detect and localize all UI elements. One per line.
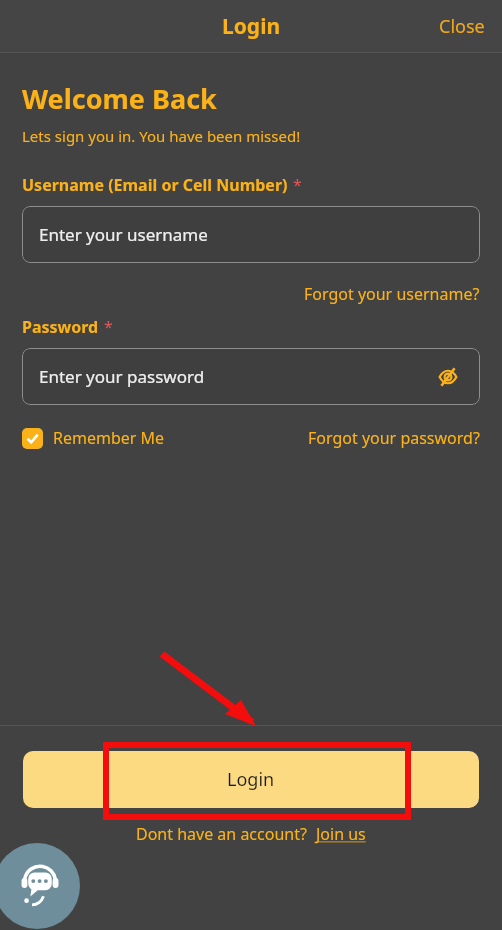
staticText: *: [293, 174, 302, 196]
staticText: Password: [22, 316, 99, 338]
staticText: Dont have an account?: [136, 823, 307, 845]
staticText: Join us: [316, 823, 366, 845]
button[interactable]: Close: [422, 4, 502, 49]
button[interactable]: Join us: [316, 823, 366, 845]
button[interactable]: Enter your password: [22, 348, 480, 405]
button[interactable]: Forgot your password?: [308, 427, 480, 449]
button[interactable]: Forgot your username?: [304, 283, 480, 305]
staticText: Lets sign you in. You have been missed!: [22, 126, 301, 146]
staticText: Forgot your password?: [308, 427, 480, 449]
staticText: Username (Email or Cell Number): [22, 174, 288, 196]
staticText: Enter your username: [39, 223, 208, 246]
button[interactable]: Remember Me: [22, 427, 165, 449]
staticText: Close: [439, 14, 485, 39]
staticText: Login: [227, 767, 275, 792]
staticText: *: [104, 316, 113, 338]
staticText: Forgot your username?: [304, 283, 480, 305]
staticText: Remember Me: [53, 427, 165, 449]
staticText: Enter your password: [39, 365, 205, 388]
button[interactable]: Show password: [433, 362, 463, 392]
button[interactable]: Login: [23, 751, 479, 808]
button[interactable]: Chat with support: [0, 843, 80, 929]
staticText: Login: [222, 12, 281, 41]
staticText: Welcome Back: [22, 80, 217, 117]
button[interactable]: Enter your username: [22, 206, 480, 263]
